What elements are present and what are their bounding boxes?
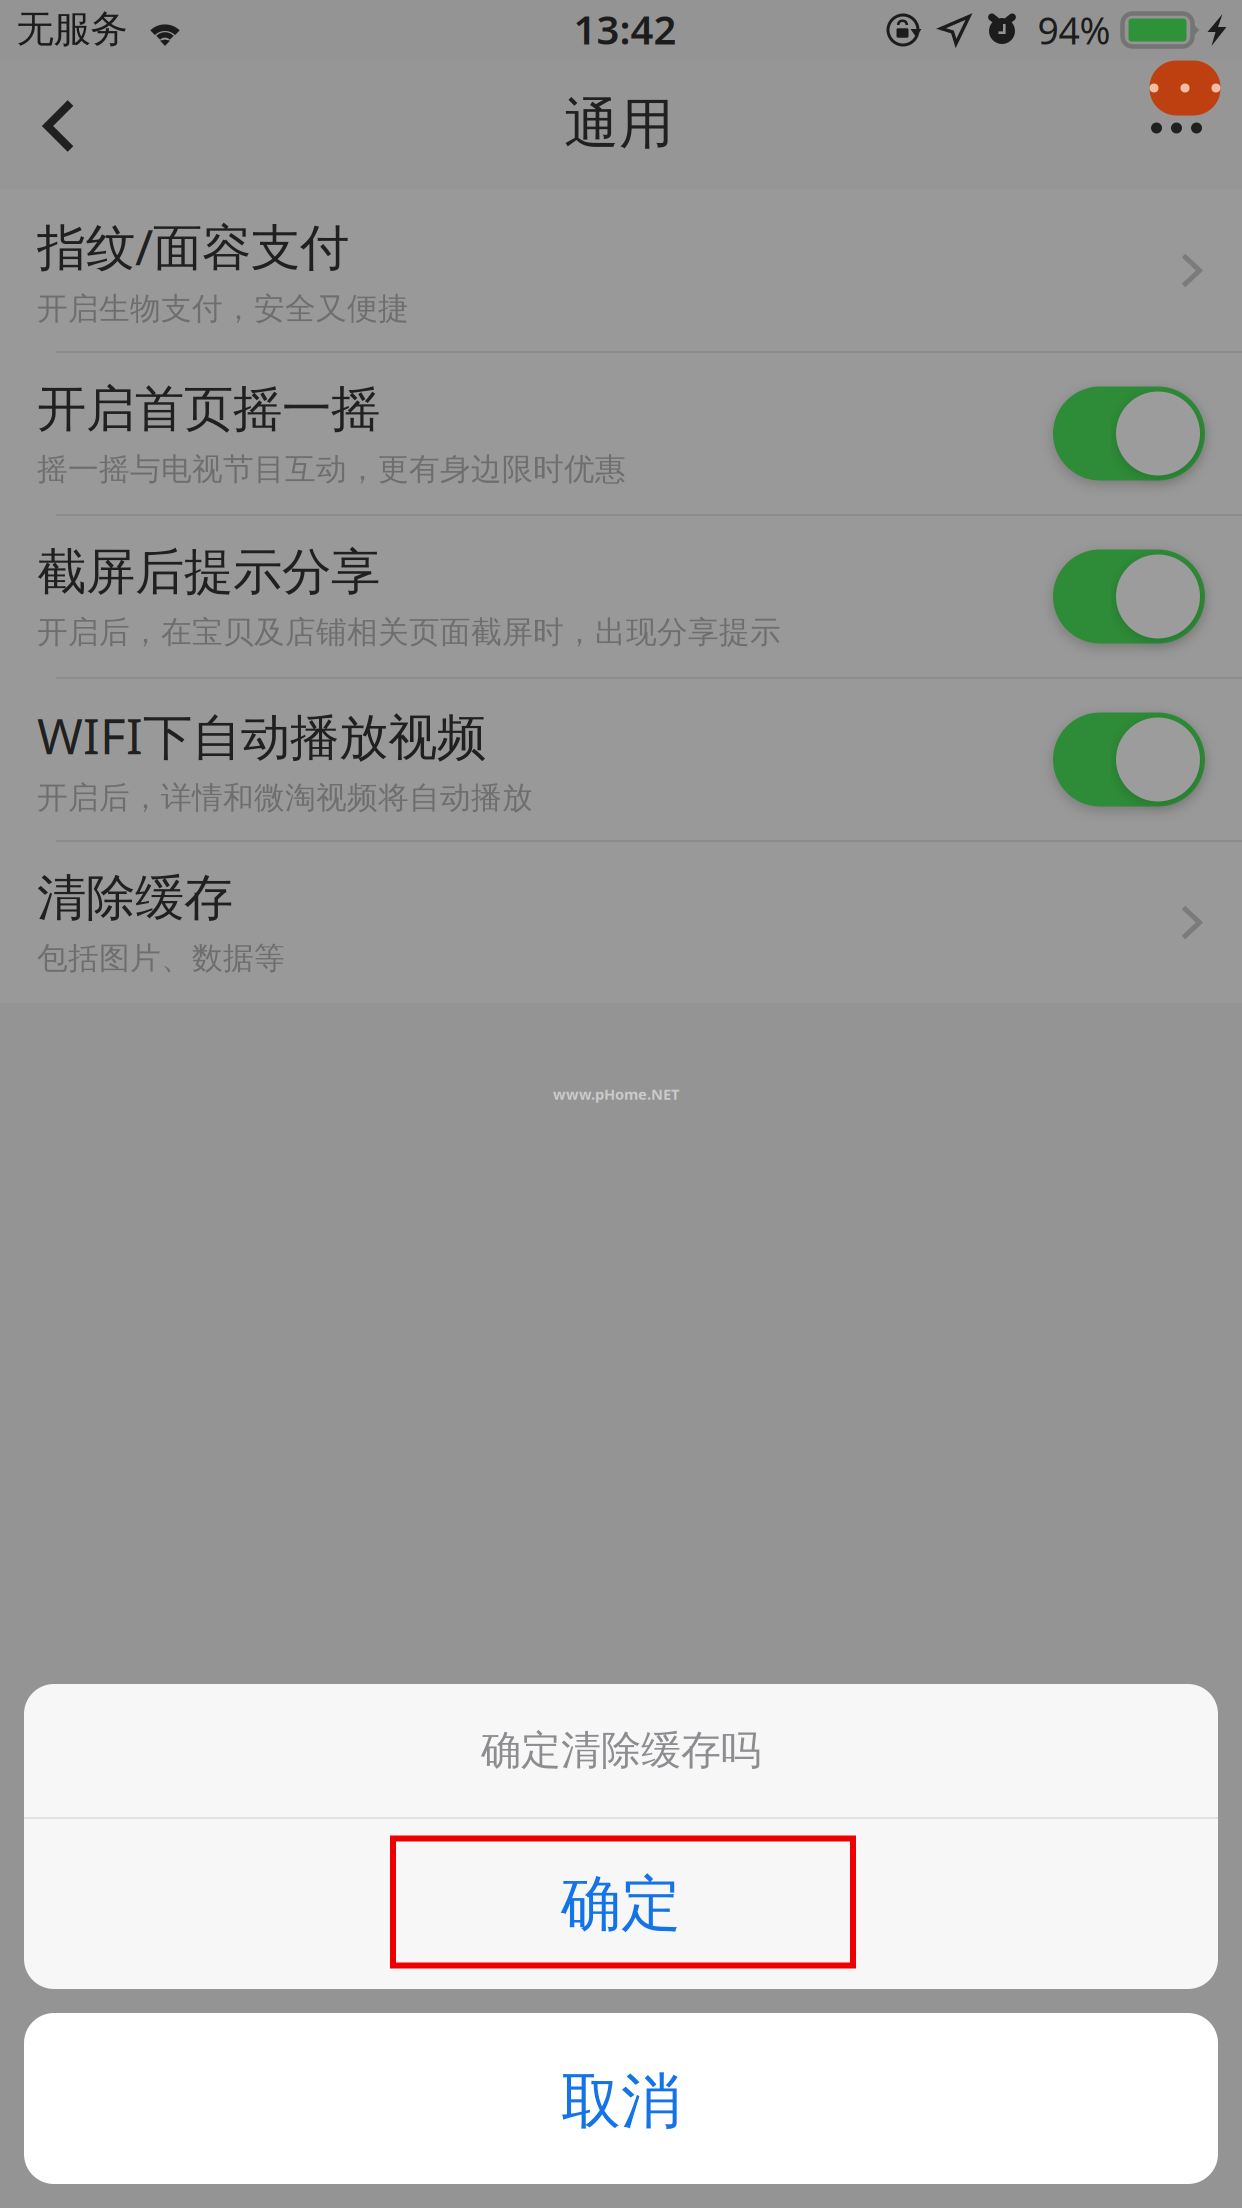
button[interactable]: 取消 [24,2013,1218,2184]
staticText: 确定 [561,1867,681,1941]
staticText: 开启首页摇一摇 [37,379,380,439]
staticText: 指纹/面容支付 [37,213,349,279]
staticText: 通用 [564,90,674,157]
button[interactable]: Back [0,66,118,186]
button[interactable]: 开启首页摇一摇 [0,353,1242,514]
staticText: 13:42 [573,2,676,55]
button[interactable]: 确定 [24,1819,1218,1989]
staticText: 包括图片、数据等 [37,939,285,977]
staticText: 摇一摇与电视节目互动，更有身边限时优惠 [37,450,626,488]
button[interactable]: 清除缓存 [0,842,1242,1003]
staticText: 清除缓存 [37,868,233,928]
button[interactable]: 截屏后提示分享 [0,516,1242,677]
button[interactable]: 指纹/面容支付 [0,190,1242,351]
staticText: 开启后，详情和微淘视频将自动播放 [37,779,533,817]
staticText: 确定清除缓存吗 [481,1726,761,1775]
staticText: 截屏后提示分享 [37,542,380,602]
staticText: 取消 [561,2065,681,2138]
staticText: 无服务 [16,6,127,52]
button[interactable]: More [1048,61,1238,191]
staticText: WIFI下自动播放视频 [37,702,486,768]
button[interactable]: WIFI下自动播放视频 [0,679,1242,840]
staticText: 开启生物支付，安全又便捷 [37,290,409,328]
staticText: www.pHome.NET [553,1084,679,1104]
staticText: 94% [1037,5,1110,55]
staticText: 开启后，在宝贝及店铺相关页面截屏时，出现分享提示 [37,613,781,651]
